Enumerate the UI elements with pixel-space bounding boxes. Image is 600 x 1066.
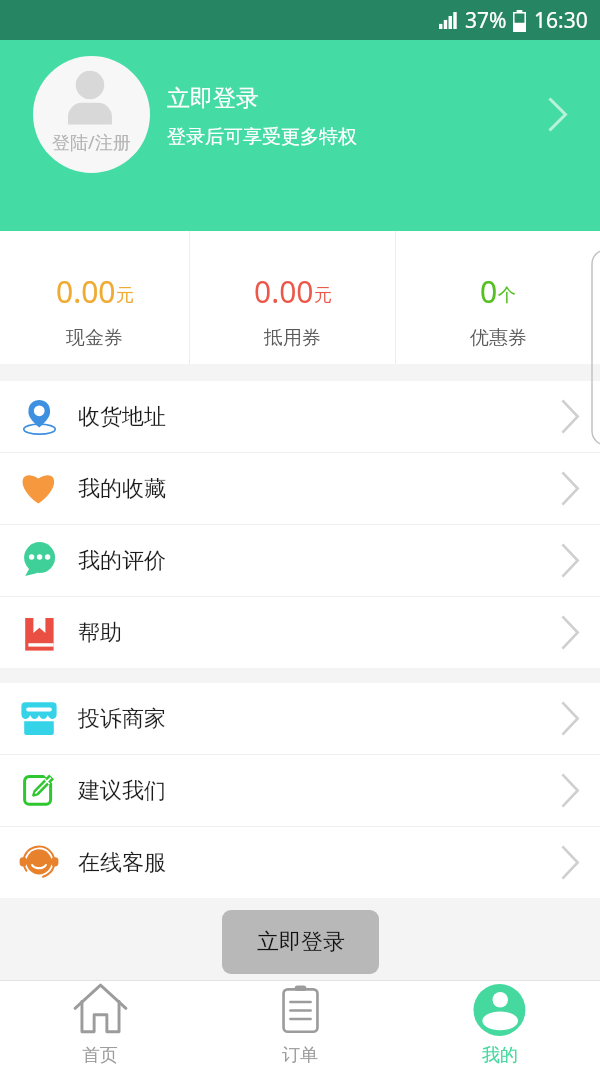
- staticText: 优惠券: [470, 326, 527, 350]
- staticText: 立即登录: [167, 84, 259, 113]
- staticText: 首页: [82, 1044, 118, 1066]
- button[interactable]: 建议我们: [0, 755, 600, 826]
- button[interactable]: 帮助: [0, 597, 600, 668]
- staticText: 我的收藏: [78, 475, 166, 503]
- staticText: 登录后可享受更多特权: [167, 125, 357, 149]
- button[interactable]: 立即登录: [222, 910, 379, 974]
- staticText: 抵用券: [264, 326, 321, 350]
- button[interactable]: 投诉商家: [0, 683, 600, 754]
- button[interactable]: 0.00: [0, 231, 189, 364]
- staticText: 0.00: [56, 271, 116, 312]
- staticText: 37%: [465, 6, 507, 35]
- button[interactable]: 登陆/注册: [0, 40, 600, 231]
- staticText: 元: [116, 284, 134, 307]
- staticText: 投诉商家: [78, 705, 166, 733]
- staticText: 16:30: [534, 6, 588, 35]
- staticText: 建议我们: [78, 777, 166, 805]
- staticText: 登陆/注册: [52, 130, 131, 155]
- staticText: 我的评价: [78, 547, 166, 575]
- button[interactable]: 在线客服: [0, 827, 600, 898]
- button[interactable]: 收货地址: [0, 381, 600, 452]
- staticText: 我的: [482, 1044, 518, 1066]
- staticText: 0: [480, 271, 498, 312]
- other: Go to login: [549, 98, 567, 131]
- staticText: 帮助: [78, 619, 122, 647]
- staticText: 0.00: [254, 271, 314, 312]
- button[interactable]: 首页: [0, 981, 200, 1066]
- staticText: 现金券: [66, 326, 123, 350]
- staticText: 立即登录: [257, 928, 345, 956]
- staticText: 订单: [282, 1044, 318, 1066]
- button[interactable]: 0.00: [190, 231, 395, 364]
- staticText: 元: [314, 284, 332, 307]
- button[interactable]: 我的: [400, 981, 600, 1066]
- button[interactable]: 0: [396, 231, 600, 364]
- staticText: 个: [498, 284, 516, 307]
- staticText: 收货地址: [78, 403, 166, 431]
- staticText: 在线客服: [78, 849, 166, 877]
- button[interactable]: 我的评价: [0, 525, 600, 596]
- button[interactable]: 订单: [200, 981, 400, 1066]
- button[interactable]: 我的收藏: [0, 453, 600, 524]
